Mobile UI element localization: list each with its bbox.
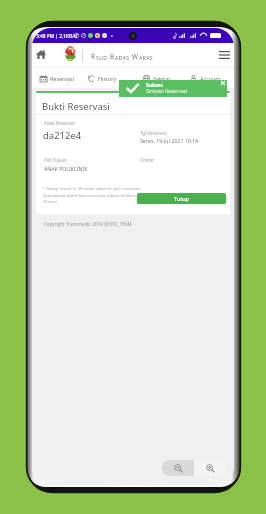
staticText: ADAS: [115, 54, 130, 61]
staticText: R: [91, 52, 96, 61]
staticText: B: [110, 52, 115, 61]
button[interactable]: Sekitar: [143, 68, 171, 88]
staticText: Sukses: [146, 82, 164, 89]
staticText: Simpan Reservasi: [146, 88, 188, 95]
button[interactable]: Menu: [216, 47, 232, 63]
staticText: Senin, 19-Jul-2021 10:14: [140, 137, 198, 144]
staticText: SUD: [96, 54, 108, 61]
staticText: Copyright Transmedic, 2019 @EPIC_TEAM: [44, 221, 132, 227]
button[interactable]: Close: [221, 81, 225, 85]
staticText: Selanjutnya Bukti Reservasi bisa dilihat…: [43, 193, 137, 204]
button[interactable]: Zoom out: [162, 460, 194, 476]
staticText: Kode Reservasi: [44, 120, 76, 126]
staticText: Bukti Reservasi: [42, 100, 110, 113]
button[interactable]: Account: [190, 68, 221, 88]
button[interactable]: Reservasi: [40, 68, 74, 88]
staticText: History: [98, 75, 117, 82]
staticText: W: [132, 52, 139, 61]
staticText: ARAS: [139, 54, 153, 61]
staticText: da212e4: [43, 129, 82, 142]
staticText: * Harap Check-in 30 menit sebelum jam re…: [43, 186, 140, 192]
staticText: Tutup: [174, 195, 189, 202]
staticText: Account: [200, 75, 221, 82]
staticText: Sekitar: [153, 75, 171, 82]
button[interactable]: Home: [33, 46, 49, 62]
staticText: ANAK POLIKLINIK: [44, 165, 88, 172]
staticText: Poli Tujuan: [44, 157, 67, 163]
staticText: 3:48 PM | 2,1KB/d: [36, 33, 78, 40]
staticText: Dokter: [140, 157, 155, 163]
button[interactable]: Tutup: [137, 193, 226, 204]
staticText: Reservasi: [50, 75, 74, 82]
staticText: Tgl Reservasi: [140, 130, 167, 136]
button[interactable]: Zoom in: [194, 460, 226, 476]
button[interactable]: History: [88, 68, 117, 88]
